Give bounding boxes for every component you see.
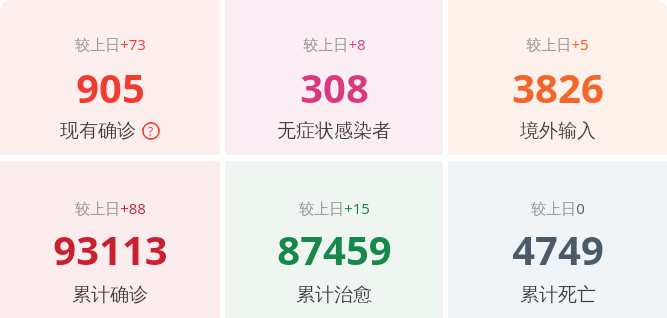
staticText: 较上日+8 <box>303 34 366 54</box>
staticText: 87459 <box>277 222 392 276</box>
staticText: 4749 <box>512 222 604 276</box>
button[interactable]: 较上日+73 <box>0 0 220 155</box>
staticText: ? <box>148 123 154 139</box>
staticText: 累计治愈 <box>296 283 372 307</box>
staticText: 308 <box>300 60 369 114</box>
staticText: 905 <box>76 60 145 114</box>
button[interactable]: 较上日+8 <box>225 0 443 155</box>
staticText: 3826 <box>512 60 604 114</box>
staticText: 较上日+73 <box>75 34 146 54</box>
staticText: 较上日0 <box>531 198 585 218</box>
staticText: 较上日+5 <box>526 34 589 54</box>
staticText: 现有确诊 <box>60 119 136 143</box>
staticText: 较上日+15 <box>299 198 370 218</box>
button[interactable]: 较上日+5 <box>448 0 667 155</box>
button[interactable]: 帮助说明 <box>142 122 160 140</box>
staticText: 累计确诊 <box>72 283 148 307</box>
staticText: 较上日+88 <box>75 198 146 218</box>
button[interactable]: 较上日0 <box>448 161 667 318</box>
button[interactable]: 较上日+15 <box>225 161 443 318</box>
staticText: 无症状感染者 <box>277 119 391 143</box>
button[interactable]: 较上日+88 <box>0 161 220 318</box>
staticText: 93113 <box>53 222 168 276</box>
staticText: 境外输入 <box>520 119 596 143</box>
staticText: 累计死亡 <box>520 283 596 307</box>
